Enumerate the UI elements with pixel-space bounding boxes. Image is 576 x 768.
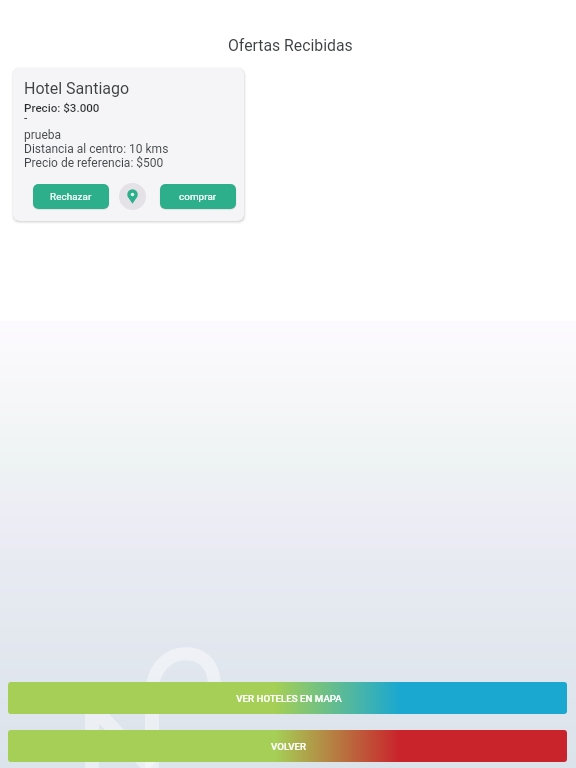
staticText: Distancia al centro: 10 kms <box>24 142 169 156</box>
staticText: comprar <box>179 191 217 202</box>
staticText: - <box>24 111 28 124</box>
button[interactable]: VER HOTELES EN MAPA <box>8 682 567 714</box>
staticText: Ofertas Recibidas <box>228 36 353 55</box>
button[interactable]: Ver en mapa <box>119 183 146 210</box>
staticText: prueba <box>24 128 62 142</box>
staticText: Precio de referencia: $500 <box>24 156 164 170</box>
button[interactable]: comprar <box>160 184 236 209</box>
staticText: VER HOTELES EN MAPA <box>236 693 342 704</box>
staticText: Hotel Santiago <box>24 79 130 98</box>
staticText: Rechazar <box>50 191 92 202</box>
button[interactable]: Rechazar <box>33 184 109 209</box>
button[interactable]: VOLVER <box>8 730 567 762</box>
staticText: Precio: $3.000 <box>24 101 100 115</box>
staticText: VOLVER <box>271 741 306 752</box>
